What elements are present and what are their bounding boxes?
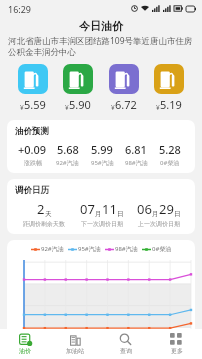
staticText: 5.28	[159, 142, 181, 157]
staticText: 11	[102, 200, 117, 218]
staticText: 95#汽油	[91, 159, 114, 167]
staticText: 天	[45, 210, 52, 218]
staticText: 5.99	[91, 142, 113, 157]
staticText: 92#汽油	[41, 245, 64, 253]
button[interactable]: 调价日历	[7, 179, 195, 234]
button[interactable]: 油价预测	[7, 120, 195, 173]
staticText: ¥	[111, 103, 115, 112]
staticText: 加油站	[66, 347, 84, 355]
button[interactable]: Fuel type	[150, 62, 188, 114]
staticText: 河北省唐山市丰润区团结路109号靠近唐山市住房公积金丰润分中心	[8, 35, 194, 58]
staticText: 涨跌幅	[24, 159, 42, 167]
staticText: 上一次调价日期	[138, 220, 180, 228]
staticText: 日	[174, 210, 181, 218]
staticText: 调价日历	[15, 185, 49, 196]
staticText: +0.09	[18, 142, 47, 157]
staticText: 5.90	[69, 97, 91, 112]
staticText: ¥	[65, 103, 69, 112]
staticText: 06	[137, 200, 152, 218]
staticText: 距调价剩余天数	[23, 220, 65, 228]
staticText: 16:29	[8, 3, 32, 15]
staticText: 0#柴油	[160, 159, 180, 167]
staticText: 月	[152, 210, 159, 218]
staticText: 07	[80, 200, 95, 218]
staticText: 92#汽油	[56, 159, 79, 167]
button[interactable]: Fuel type	[105, 62, 143, 114]
button[interactable]: Fuel type	[59, 62, 97, 114]
staticText: 5.68	[57, 142, 79, 157]
staticText: 日	[117, 210, 124, 218]
other: Fuel type	[18, 64, 48, 94]
button[interactable]: Fuel type	[14, 62, 52, 114]
staticText: 今日油价	[79, 19, 123, 33]
staticText: 月	[95, 210, 102, 218]
button[interactable]: 油价	[0, 329, 50, 359]
button[interactable]: 更多	[151, 329, 202, 359]
staticText: ¥	[20, 103, 24, 112]
staticText: 29	[159, 200, 174, 218]
button[interactable]: 92#汽油	[7, 240, 195, 336]
staticText: 更多	[171, 347, 183, 355]
staticText: ¥	[156, 103, 160, 112]
staticText: 油价预测	[15, 126, 49, 137]
other: Fuel type	[109, 64, 139, 94]
staticText: 下一次调价日期	[81, 220, 123, 228]
other: Fuel type	[63, 64, 93, 94]
staticText: 6.72	[115, 97, 137, 112]
staticText: 0#柴油	[152, 245, 172, 253]
staticText: 98#汽油	[125, 159, 148, 167]
button[interactable]: 加油站	[50, 329, 100, 359]
staticText: 5.59	[24, 97, 46, 112]
button[interactable]: 查询	[100, 329, 151, 359]
staticText: 2	[37, 200, 45, 218]
staticText: 98#汽油	[115, 245, 138, 253]
staticText: 查询	[120, 347, 132, 355]
other: Fuel type	[154, 64, 184, 94]
staticText: 6.81	[125, 142, 147, 157]
staticText: 95#汽油	[78, 245, 101, 253]
staticText: 5.19	[160, 97, 182, 112]
staticText: 油价	[19, 347, 31, 355]
